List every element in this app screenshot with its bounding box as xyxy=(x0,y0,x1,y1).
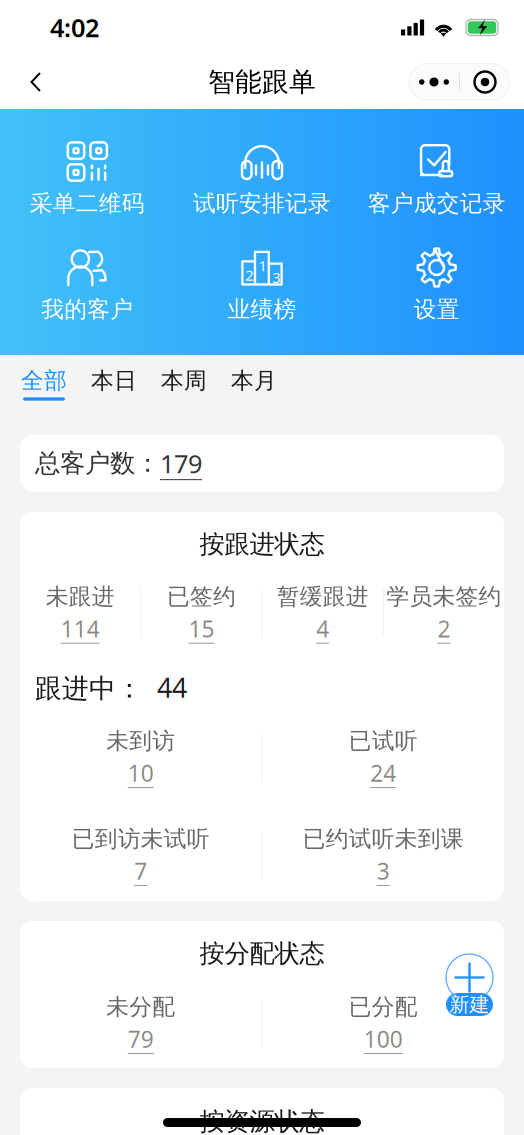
staticText: 客户成交记录 xyxy=(368,190,506,217)
staticText: 本月 xyxy=(231,367,277,395)
staticText: 跟进中： 44 xyxy=(35,670,187,705)
button[interactable]: 试听安排记录 xyxy=(175,141,349,217)
button[interactable]: 新建 xyxy=(446,947,493,1008)
staticText: 未分配 xyxy=(106,993,175,1021)
button[interactable]: 暂缓跟进 xyxy=(262,583,383,644)
staticText: 新建 xyxy=(449,992,489,1017)
staticText: 已约试听未到课 xyxy=(303,825,464,853)
button[interactable]: 2 xyxy=(175,247,349,323)
button[interactable]: 未到访 xyxy=(20,727,261,788)
button[interactable]: 已分配 xyxy=(262,993,504,1054)
staticText: 按分配状态 xyxy=(199,938,324,969)
staticText: 试听安排记录 xyxy=(193,190,331,217)
staticText: 本日 xyxy=(91,367,137,395)
staticText: 采单二维码 xyxy=(30,190,145,217)
staticText: 24 xyxy=(370,758,396,788)
staticText: 已分配 xyxy=(349,993,418,1021)
button[interactable]: 客户成交记录 xyxy=(349,141,524,217)
staticText: 设置 xyxy=(414,296,460,323)
staticText: 业绩榜 xyxy=(227,296,296,323)
staticText: 智能跟单 xyxy=(208,66,316,98)
staticText: 1 xyxy=(259,256,267,275)
staticText: 总客户数： xyxy=(35,448,160,479)
staticText: 10 xyxy=(128,758,154,788)
button[interactable]: 本日 xyxy=(79,355,149,416)
button[interactable]: 采单二维码 xyxy=(0,141,175,217)
staticText: 已到访未试听 xyxy=(72,825,210,853)
button[interactable]: Back xyxy=(14,60,58,104)
staticText: 我的客户 xyxy=(41,296,133,323)
staticText: 已签约 xyxy=(167,583,236,611)
staticText: 2 xyxy=(437,614,450,644)
button[interactable]: 本周 xyxy=(149,355,219,416)
button[interactable]: Close xyxy=(460,64,510,100)
button[interactable]: 已到访未试听 xyxy=(20,825,261,886)
staticText: 未到访 xyxy=(106,727,175,755)
staticText: 全部 xyxy=(21,367,67,395)
staticText: 2 xyxy=(245,265,253,285)
staticText: 179 xyxy=(160,446,202,480)
button[interactable]: 已试听 xyxy=(262,727,504,788)
staticText: 4 xyxy=(316,614,329,644)
button[interactable]: 我的客户 xyxy=(0,247,175,323)
staticText: 暂缓跟进 xyxy=(277,583,369,611)
staticText: 按跟进状态 xyxy=(199,529,324,560)
staticText: 114 xyxy=(61,614,100,644)
staticText: 已试听 xyxy=(349,727,418,755)
staticText: 本周 xyxy=(161,367,207,395)
staticText: 学员未签约 xyxy=(386,583,501,611)
staticText: 3 xyxy=(377,856,390,886)
button[interactable]: 本月 xyxy=(219,355,289,416)
button[interactable]: 全部 xyxy=(9,355,79,416)
button[interactable]: 已签约 xyxy=(141,583,261,644)
button[interactable]: 设置 xyxy=(349,247,524,323)
button[interactable]: 学员未签约 xyxy=(384,583,504,644)
staticText: 4:02 xyxy=(50,11,99,44)
button[interactable]: 未跟进 xyxy=(20,583,140,644)
staticText: 3 xyxy=(272,268,280,287)
staticText: 7 xyxy=(134,856,147,886)
staticText: 按资源状态 xyxy=(199,1106,324,1135)
staticText: 未跟进 xyxy=(46,583,115,611)
button[interactable]: 已约试听未到课 xyxy=(262,825,504,886)
staticText: 100 xyxy=(364,1024,403,1054)
button[interactable]: More xyxy=(409,64,459,100)
button[interactable]: 未分配 xyxy=(20,993,261,1054)
staticText: 79 xyxy=(128,1024,154,1054)
staticText: 15 xyxy=(188,614,214,644)
